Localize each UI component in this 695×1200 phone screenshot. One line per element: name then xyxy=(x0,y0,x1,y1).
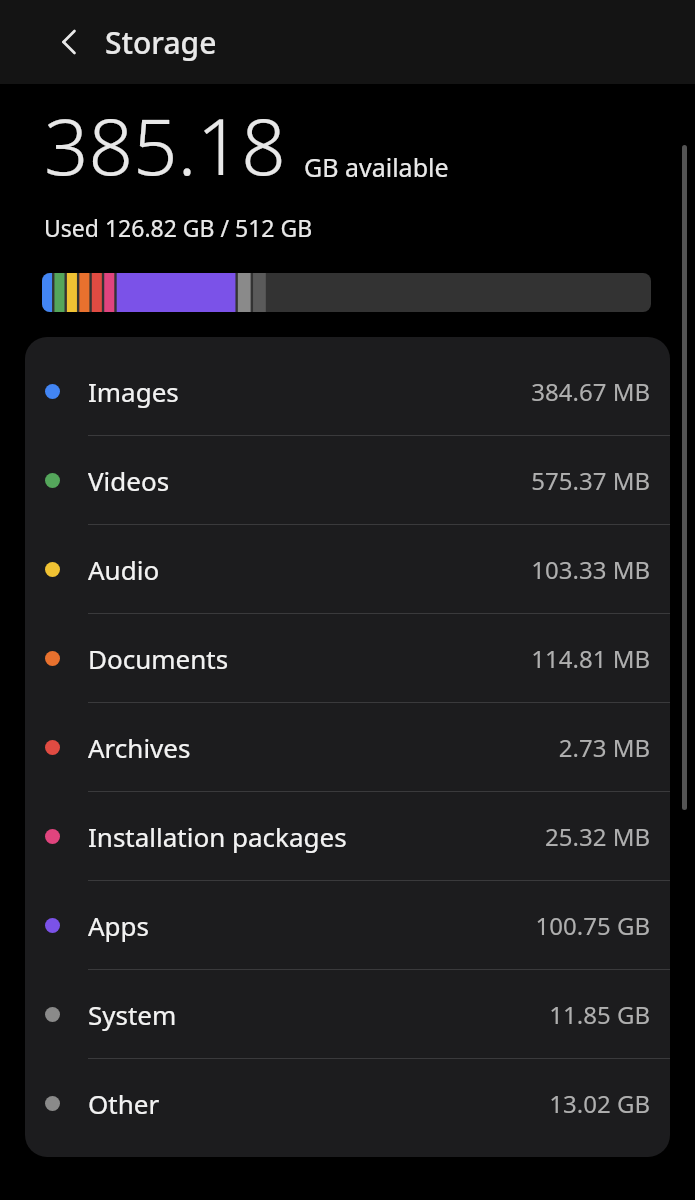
button[interactable]: Apps xyxy=(25,881,670,969)
button[interactable]: Back xyxy=(44,18,92,66)
staticText: Storage xyxy=(105,22,217,63)
button[interactable]: Audio xyxy=(25,525,670,613)
staticText: 11.85 GB xyxy=(549,998,650,1031)
button[interactable]: Other xyxy=(25,1059,670,1147)
staticText: GB available xyxy=(304,150,449,184)
staticText: 2.73 MB xyxy=(558,731,650,764)
staticText: Audio xyxy=(88,552,160,587)
staticText: Images xyxy=(88,374,179,409)
staticText: 575.37 MB xyxy=(531,464,650,497)
button[interactable]: Installation packages xyxy=(25,792,670,880)
staticText: 114.81 MB xyxy=(531,642,650,675)
button[interactable]: Archives xyxy=(25,703,670,791)
staticText: 385.18 xyxy=(44,92,286,198)
staticText: 13.02 GB xyxy=(549,1087,650,1120)
staticText: Other xyxy=(88,1086,160,1121)
staticText: 384.67 MB xyxy=(531,375,650,408)
button[interactable]: Videos xyxy=(25,436,670,524)
staticText: 100.75 GB xyxy=(535,909,650,942)
button[interactable]: System xyxy=(25,970,670,1058)
staticText: Installation packages xyxy=(88,819,347,854)
staticText: Apps xyxy=(88,908,150,943)
staticText: Archives xyxy=(88,730,191,765)
staticText: System xyxy=(88,997,177,1032)
staticText: Used 126.82 GB / 512 GB xyxy=(44,212,313,243)
staticText: 103.33 MB xyxy=(531,553,650,586)
button[interactable]: Images xyxy=(25,347,670,435)
staticText: Documents xyxy=(88,641,229,676)
staticText: Videos xyxy=(88,463,170,498)
button[interactable]: Documents xyxy=(25,614,670,702)
staticText: 25.32 MB xyxy=(545,820,650,853)
